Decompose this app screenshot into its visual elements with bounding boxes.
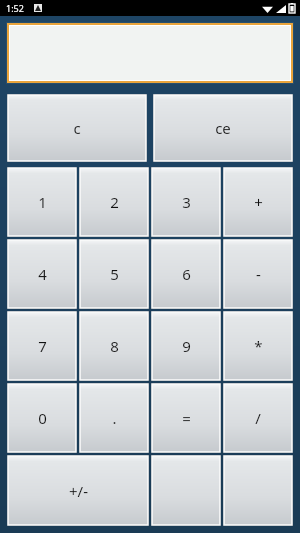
staticText: 2 (110, 192, 119, 212)
staticText: 8 (110, 336, 119, 356)
button[interactable]: 1 (6, 166, 78, 238)
button[interactable]: 6 (150, 238, 222, 310)
button[interactable]: 9 (150, 310, 222, 382)
staticText: = (182, 408, 191, 428)
staticText: - (256, 264, 261, 284)
button[interactable]: 3 (150, 166, 222, 238)
button[interactable]: * (222, 310, 294, 382)
button[interactable]: . (78, 382, 150, 454)
button[interactable]: c (6, 93, 148, 163)
staticText: 3 (182, 192, 191, 212)
button[interactable]: +/- (6, 454, 150, 527)
staticText: 4 (38, 264, 47, 284)
staticText: + (254, 192, 263, 212)
staticText: . (112, 408, 117, 428)
staticText: ce (215, 118, 231, 138)
staticText: +/- (69, 481, 88, 501)
button[interactable]: / (222, 382, 294, 454)
staticText: 0 (38, 408, 47, 428)
button[interactable]: 8 (78, 310, 150, 382)
staticText: * (254, 336, 263, 356)
button[interactable]: ce (152, 93, 294, 163)
button[interactable]: = (150, 382, 222, 454)
button[interactable]: 7 (6, 310, 78, 382)
staticText: c (73, 118, 81, 138)
button[interactable]: Key (150, 454, 222, 527)
button[interactable]: + (222, 166, 294, 238)
button[interactable]: - (222, 238, 294, 310)
button[interactable]: 0 (6, 382, 78, 454)
staticText: 7 (38, 336, 47, 356)
button[interactable]: 4 (6, 238, 78, 310)
button[interactable]: 2 (78, 166, 150, 238)
staticText: 5 (110, 264, 119, 284)
button[interactable]: 5 (78, 238, 150, 310)
staticText: 6 (182, 264, 191, 284)
staticText: 1:52 (6, 2, 24, 14)
staticText: 9 (182, 336, 191, 356)
staticText: / (255, 408, 261, 428)
staticText: 1 (38, 192, 47, 212)
button[interactable]: Key (222, 454, 294, 527)
